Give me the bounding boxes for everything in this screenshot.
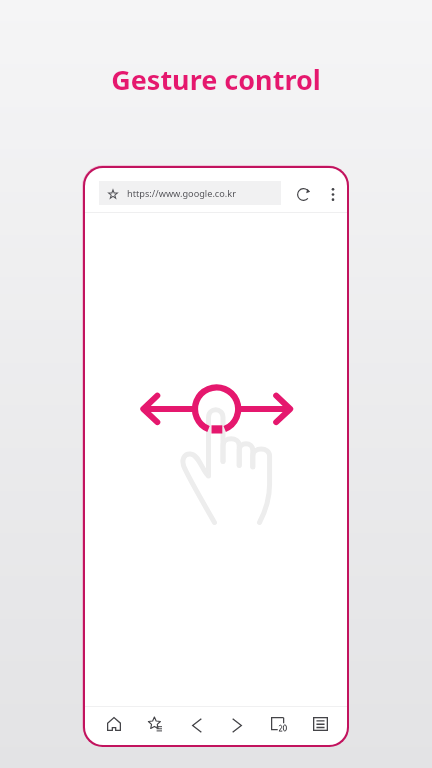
staticText: https://www.google.co.kr xyxy=(127,187,236,200)
button[interactable]: Tabs xyxy=(263,708,295,740)
button[interactable]: Address bar xyxy=(99,181,281,205)
button[interactable]: Back xyxy=(181,709,213,741)
button[interactable]: Menu xyxy=(304,708,336,740)
staticText: Gesture control xyxy=(111,61,321,98)
button[interactable]: Forward xyxy=(221,709,253,741)
button[interactable]: More options xyxy=(322,183,344,205)
button[interactable]: Bookmarks xyxy=(139,708,171,740)
button[interactable]: Reload xyxy=(292,183,314,205)
button[interactable]: Home xyxy=(98,708,130,740)
